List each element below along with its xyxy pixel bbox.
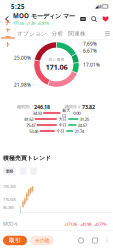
staticText: 86.385 xyxy=(3,205,14,210)
staticText: 機関買い xyxy=(17,104,33,109)
staticText: 53.46 xyxy=(29,128,38,134)
button[interactable]: Favorite xyxy=(101,15,110,23)
button[interactable]: Comments xyxy=(74,233,88,247)
staticText: その他 xyxy=(34,237,49,244)
staticText: MOO 今 xyxy=(3,221,18,227)
staticText: 関連株 xyxy=(68,30,86,37)
staticText: 中口 xyxy=(59,123,67,127)
staticText: 246.18 xyxy=(33,103,50,111)
staticText: 195.265 xyxy=(3,184,16,189)
staticText: 小口 xyxy=(57,129,65,133)
staticText: ◢ xyxy=(95,4,98,9)
staticText: 最大口 xyxy=(62,108,70,118)
button[interactable]: オプション xyxy=(15,28,49,39)
button[interactable]: 関連株 xyxy=(66,28,88,39)
staticText: 81.62 xyxy=(24,116,33,122)
staticText: ıl xyxy=(99,3,101,10)
staticText: 6.67% xyxy=(83,48,97,54)
staticText: 24.57 xyxy=(78,122,87,128)
button[interactable]: チャート xyxy=(1,28,15,39)
staticText: 5:25 xyxy=(11,2,25,11)
staticText: MOO モーディン マー xyxy=(13,12,75,20)
button[interactable]: Back xyxy=(4,15,10,23)
staticText: オプション xyxy=(17,30,47,37)
staticText: 価格 xyxy=(5,168,13,174)
staticText: チャート xyxy=(5,19,11,48)
staticText: 取引 xyxy=(9,237,21,244)
staticText: +0.77% xyxy=(94,221,107,227)
staticText: 25.00% xyxy=(14,55,31,61)
button[interactable]: More tabs xyxy=(102,28,113,39)
staticText: 73.82 xyxy=(81,103,95,111)
staticText: 7.69% xyxy=(83,41,97,47)
staticText: 75.47 xyxy=(26,122,35,128)
staticText: 31.25 xyxy=(80,116,89,122)
staticText: 機関売り xyxy=(65,104,81,109)
staticText: 積極売買トレンド xyxy=(3,154,51,162)
staticText: 21.98% xyxy=(14,82,31,88)
staticText: +171.06 xyxy=(64,221,77,227)
staticText: 171.06 +1.38 +0.81% xyxy=(13,21,49,26)
staticText: 17.01% xyxy=(83,62,100,68)
staticText: 分析 xyxy=(51,30,63,37)
staticText: 大口 xyxy=(59,117,67,121)
staticText: 34.93 xyxy=(33,110,42,116)
button[interactable]: 取引 xyxy=(3,236,27,245)
staticText: 171.06 xyxy=(45,62,67,72)
staticText: 21.74 xyxy=(75,128,84,134)
button[interactable]: Trade simulator xyxy=(79,16,87,22)
button[interactable]: 価格 xyxy=(3,167,16,175)
staticText: 176.605 xyxy=(3,197,16,202)
button[interactable]: Candle style xyxy=(30,167,37,175)
staticText: 0.00 xyxy=(73,110,80,116)
button[interactable]: 分析 xyxy=(49,28,66,39)
button[interactable]: その他 xyxy=(30,236,54,245)
staticText: +41.98 xyxy=(80,221,91,227)
button[interactable]: Search xyxy=(90,15,98,23)
button[interactable]: More xyxy=(102,233,112,247)
staticText: 高い価格 xyxy=(48,57,64,62)
button[interactable]: Notes xyxy=(88,233,102,247)
